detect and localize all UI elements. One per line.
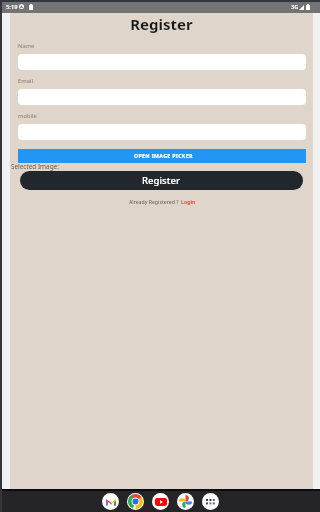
button[interactable]: Gmail <box>102 493 119 510</box>
staticText: mobile <box>18 112 37 120</box>
staticText: Email <box>18 77 33 85</box>
staticText: Already Registered ? <box>129 198 180 205</box>
button[interactable]: Photos <box>177 493 194 510</box>
button[interactable]: Register <box>20 171 303 190</box>
button[interactable]: OPEN IMAGE PICKER <box>18 149 306 163</box>
button[interactable]: Login <box>180 198 197 205</box>
staticText: Selected Image: <box>11 162 59 171</box>
staticText: 5:19 <box>6 3 18 11</box>
staticText: Register <box>10 14 313 34</box>
staticText: Name <box>18 42 35 50</box>
button[interactable]: All apps <box>202 493 219 510</box>
button[interactable]: YouTube <box>152 493 169 510</box>
button[interactable]: Chrome <box>127 493 144 510</box>
staticText: Register <box>142 174 181 187</box>
staticText: 3G <box>291 3 299 11</box>
staticText: OPEN IMAGE PICKER <box>134 152 193 159</box>
